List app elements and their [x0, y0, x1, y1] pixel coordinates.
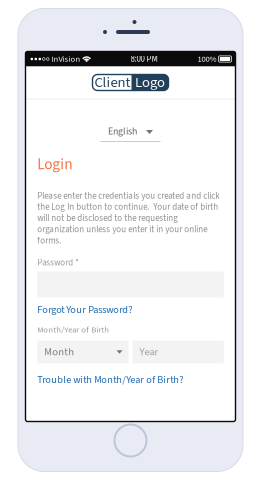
staticText: 8:00 PM [131, 53, 158, 65]
button[interactable]: English [25, 121, 235, 146]
staticText: Login [37, 153, 72, 175]
staticText: Month [44, 344, 74, 360]
staticText: Trouble with Month/Year of Birth? [37, 372, 183, 387]
staticText: Client [94, 72, 130, 93]
staticText: Logo [135, 72, 165, 93]
staticText: Month/Year of Birth [37, 323, 109, 336]
button[interactable]: Trouble with Month/Year of Birth? [37, 370, 224, 389]
button[interactable]: Year [132, 340, 224, 363]
staticText: Year [139, 344, 158, 360]
staticText: InVision [52, 53, 81, 65]
staticText: English [108, 124, 137, 139]
button[interactable]: Forgot Your Password? [37, 300, 224, 319]
staticText: Password * [37, 256, 79, 269]
button[interactable]: Month [37, 340, 128, 363]
staticText: Please enter the credentials you created… [37, 189, 219, 247]
staticText: Forgot Your Password? [37, 302, 132, 317]
staticText: 100% [197, 53, 216, 65]
